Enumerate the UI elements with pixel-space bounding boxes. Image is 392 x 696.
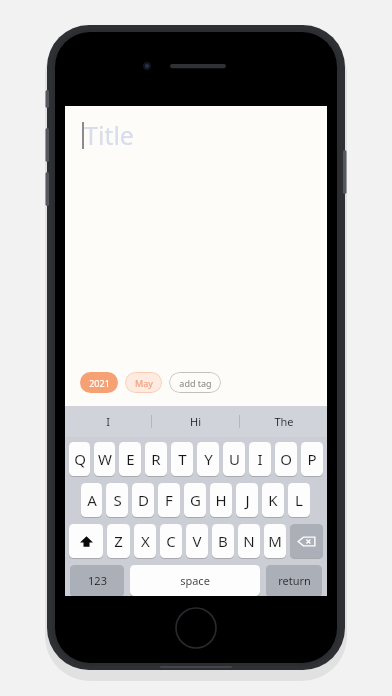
staticText: Q [74,449,86,469]
button[interactable]: 2021 [80,372,118,393]
staticText: A [87,490,97,510]
button[interactable]: A [81,483,102,517]
button[interactable]: Backspace [290,524,323,558]
button[interactable]: T [171,442,193,476]
staticText: C [166,531,176,551]
staticText: I [257,449,263,469]
button[interactable]: K [262,483,284,517]
staticText: Hi [190,414,201,429]
button[interactable]: Hi [152,406,239,437]
button[interactable]: G [184,483,206,517]
button[interactable]: F [158,483,180,517]
staticText: Title [84,118,134,152]
staticText: R [151,449,161,469]
button[interactable]: N [238,524,260,558]
staticText: U [229,449,240,469]
button[interactable]: space [130,565,260,596]
button[interactable]: Z [107,524,130,558]
button[interactable]: X [134,524,156,558]
staticText: 123 [88,573,107,588]
staticText: S [113,490,122,510]
staticText: May [135,377,153,389]
button[interactable]: S [106,483,128,517]
staticText: N [243,531,255,551]
button[interactable]: Y [197,442,219,476]
button[interactable]: B [212,524,234,558]
staticText: 2021 [89,377,110,389]
staticText: space [180,573,210,588]
button[interactable]: D [132,483,154,517]
staticText: F [165,490,173,510]
button[interactable]: V [186,524,208,558]
staticText: V [192,531,202,551]
button[interactable]: C [160,524,182,558]
button[interactable]: return [266,565,322,596]
staticText: O [280,449,292,469]
button[interactable]: add tag [169,372,221,393]
staticText: E [126,449,135,469]
button[interactable]: I [249,442,271,476]
staticText: Z [114,531,123,551]
button[interactable]: U [223,442,245,476]
staticText: Y [204,449,213,469]
button[interactable]: Q [69,442,90,476]
staticText: J [245,490,250,510]
button[interactable]: E [119,442,141,476]
button[interactable]: May [125,372,162,393]
staticText: K [268,490,278,510]
staticText: return [278,573,311,588]
button[interactable]: Shift [69,524,103,558]
staticText: H [215,490,227,510]
staticText: X [141,531,150,551]
staticText: add tag [179,377,212,389]
button[interactable]: O [275,442,297,476]
button[interactable]: L [288,483,310,517]
button[interactable]: Title [65,106,327,164]
staticText: The [274,414,294,429]
button[interactable]: 123 [70,565,124,596]
button[interactable]: W [94,442,115,476]
button[interactable]: I [65,406,151,437]
staticText: B [218,531,228,551]
button[interactable]: The [240,406,327,437]
button[interactable]: R [145,442,167,476]
staticText: D [138,490,149,510]
staticText: I [106,414,110,429]
button[interactable]: J [236,483,258,517]
staticText: T [178,449,187,469]
staticText: P [307,449,317,469]
staticText: G [190,490,201,510]
button[interactable]: H [210,483,232,517]
staticText: W [98,449,112,469]
staticText: L [295,490,303,510]
button[interactable]: M [264,524,286,558]
staticText: M [268,531,282,551]
button[interactable]: P [301,442,323,476]
